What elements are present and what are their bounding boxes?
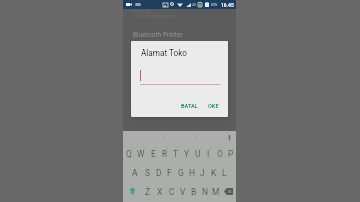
button[interactable]: U — [192, 144, 203, 163]
button[interactable]: P — [225, 144, 236, 163]
button[interactable]: W — [135, 144, 147, 163]
button[interactable]: T — [170, 144, 181, 163]
staticText: 7 — [199, 147, 202, 151]
button[interactable]: D — [153, 163, 164, 182]
staticText: A — [132, 168, 138, 178]
button[interactable]: I — [203, 144, 214, 163]
staticText: OKE — [208, 103, 219, 110]
staticText: Barcode — [132, 8, 151, 14]
button[interactable]: A — [129, 163, 141, 182]
button[interactable]: B — [188, 182, 199, 201]
button[interactable]: E — [147, 144, 159, 163]
button[interactable]: Backspace — [221, 182, 236, 201]
staticText: B — [191, 187, 197, 197]
button[interactable]: C — [166, 182, 177, 201]
staticText: S — [145, 168, 150, 178]
staticText: J — [200, 168, 205, 178]
button[interactable]: G — [175, 163, 186, 182]
staticText: 2 — [143, 147, 146, 151]
staticText: K — [211, 168, 217, 178]
button[interactable]: F — [164, 163, 175, 182]
button[interactable]: V — [177, 182, 188, 201]
staticText: 4G — [192, 3, 196, 7]
staticText: Z — [145, 187, 151, 197]
staticText: I — [207, 149, 210, 159]
button[interactable]: R — [159, 144, 170, 163]
staticText: H — [189, 168, 195, 178]
button[interactable]: Y — [181, 144, 192, 163]
staticText: G — [178, 168, 184, 178]
staticText: X — [157, 187, 163, 197]
staticText: 4 — [166, 147, 169, 151]
staticText: 3 — [155, 147, 158, 151]
staticText: 16.45 — [221, 2, 234, 8]
button[interactable]: Z — [142, 182, 154, 201]
staticText: Y — [184, 149, 190, 159]
staticText: U — [195, 149, 201, 159]
button[interactable]: X — [154, 182, 166, 201]
button[interactable]: L — [219, 163, 230, 182]
staticText: R — [162, 149, 168, 159]
staticText: 8 — [210, 147, 213, 151]
staticText: P — [228, 149, 234, 159]
staticText: BATAL — [181, 103, 198, 110]
button[interactable]: OKE — [205, 100, 222, 113]
staticText: 6 — [188, 147, 191, 151]
button[interactable]: O — [214, 144, 225, 163]
staticText: E — [151, 149, 156, 159]
staticText: Bluetooth Printer — [133, 31, 183, 39]
staticText: D — [156, 168, 162, 178]
staticText: T — [173, 149, 179, 159]
staticText: 83% — [211, 3, 218, 7]
staticText: L — [222, 168, 227, 178]
staticText: W — [137, 149, 145, 159]
staticText: O — [217, 149, 223, 159]
staticText: M — [212, 187, 220, 197]
staticText: Q — [126, 149, 132, 159]
button[interactable]: S — [141, 163, 153, 182]
button[interactable]: Q — [123, 144, 135, 163]
staticText: 0 — [232, 147, 235, 151]
button[interactable]: J — [197, 163, 208, 182]
staticText: Alamat Toko — [141, 48, 187, 58]
button[interactable]: M — [210, 182, 221, 201]
button[interactable]: Shift — [123, 182, 142, 201]
staticText: C — [169, 187, 175, 197]
staticText: N — [202, 187, 208, 197]
staticText: F — [167, 168, 172, 178]
staticText: 5 — [177, 147, 180, 151]
button[interactable]: BATAL — [178, 100, 201, 113]
button[interactable]: H — [186, 163, 197, 182]
staticText: Pilih barcode engine — [133, 14, 175, 19]
staticText: V — [180, 187, 186, 197]
button[interactable]: K — [208, 163, 219, 182]
button[interactable]: N — [199, 182, 210, 201]
button[interactable]: Voice input — [225, 134, 233, 142]
staticText: 9 — [221, 147, 224, 151]
